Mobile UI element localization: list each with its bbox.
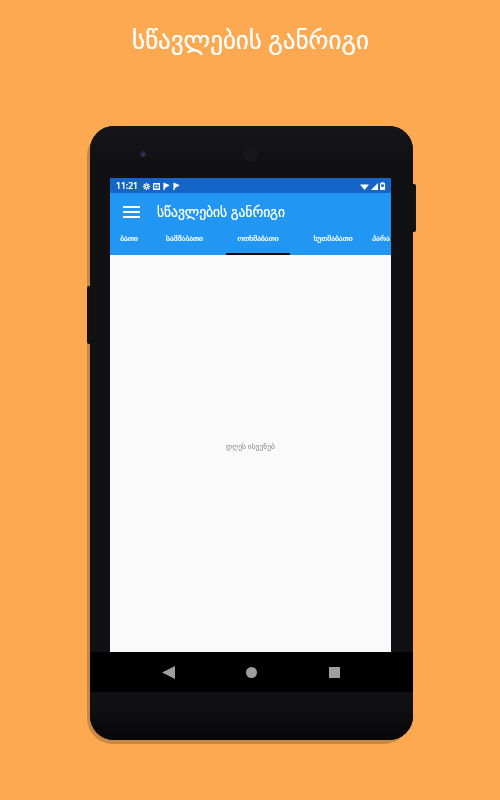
button[interactable]: ოთხშაბათი xyxy=(220,230,296,255)
staticText: ოთხშაბათი xyxy=(237,234,279,243)
staticText: პარა xyxy=(372,234,390,243)
button[interactable]: პარა xyxy=(370,230,391,255)
button[interactable]: სამშაბათი xyxy=(148,230,220,255)
button[interactable]: Back xyxy=(148,652,188,692)
button[interactable]: Home xyxy=(231,652,271,692)
button[interactable]: Recents xyxy=(314,652,354,692)
button[interactable]: Open navigation menu xyxy=(115,196,147,228)
button[interactable]: ხუთშაბათი xyxy=(296,230,370,255)
staticText: 11:21 xyxy=(116,180,138,192)
staticText: სწავლების განრიგი xyxy=(132,22,369,56)
staticText: ბათი xyxy=(120,234,138,243)
staticText: სწავლების განრიგი xyxy=(157,203,285,221)
button[interactable]: ბათი xyxy=(110,230,148,255)
staticText: სამშაბათი xyxy=(166,234,203,243)
staticText: ხუთშაბათი xyxy=(313,234,353,243)
staticText: დღეს ისვენებ xyxy=(226,441,275,451)
